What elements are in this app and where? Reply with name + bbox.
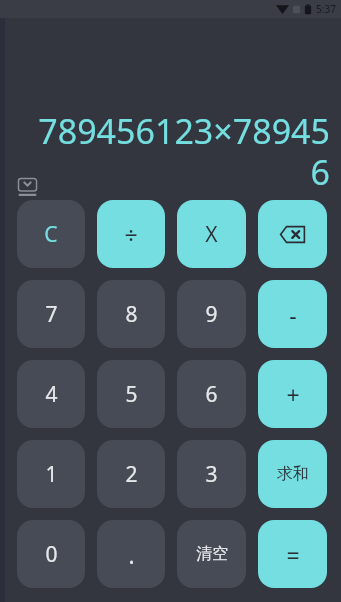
staticText: 清空 [196,544,228,564]
staticText: 1 [45,460,58,489]
staticText: ÷ [124,219,138,250]
button[interactable]: Backspace [258,200,327,268]
button[interactable]: 8 [97,280,165,348]
staticText: 5 [125,380,138,409]
button[interactable]: 4 [17,360,85,428]
staticText: C [44,220,58,249]
staticText: 5:37 [316,2,336,16]
button[interactable]: 9 [177,280,246,348]
button[interactable]: C [17,200,85,268]
button[interactable]: 清空 [177,520,246,588]
button[interactable]: 7 [17,280,85,348]
staticText: + [286,379,300,410]
button[interactable]: ÷ [97,200,165,268]
button[interactable]: 6 [177,360,246,428]
staticText: 4 [45,380,58,409]
button[interactable]: 0 [17,520,85,588]
staticText: - [289,299,297,330]
staticText: . [128,539,135,570]
button[interactable]: X [177,200,246,268]
staticText: = [286,539,300,570]
button[interactable]: - [258,280,327,348]
staticText: 6 [205,380,218,409]
staticText: 8 [125,300,138,329]
button[interactable]: 5 [97,360,165,428]
button[interactable]: 1 [17,440,85,508]
staticText: 求和 [277,464,309,484]
staticText: 7 [45,300,58,329]
button[interactable]: 求和 [258,440,327,508]
staticText: X [205,220,218,249]
button[interactable]: Hide keyboard [17,177,38,198]
button[interactable]: + [258,360,327,428]
staticText: 789456123×789456 [28,108,330,195]
staticText: 3 [205,460,218,489]
staticText: 2 [125,460,138,489]
staticText: 0 [45,540,58,569]
button[interactable]: . [97,520,165,588]
button[interactable]: = [258,520,327,588]
button[interactable]: 2 [97,440,165,508]
staticText: 9 [205,300,218,329]
button[interactable]: 3 [177,440,246,508]
